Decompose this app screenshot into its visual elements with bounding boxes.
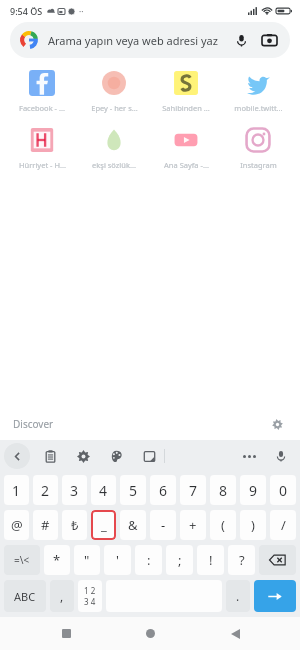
staticText: mobile.twitt... xyxy=(234,103,283,113)
staticText: ) xyxy=(251,516,255,534)
button[interactable]: Ana Sayfa -... xyxy=(150,125,222,172)
staticText: " xyxy=(84,551,90,569)
button[interactable]: Discover ayarları xyxy=(267,414,287,434)
button[interactable]: 8 xyxy=(210,475,236,505)
staticText: 3 4 xyxy=(84,596,96,607)
button[interactable]: Instagram xyxy=(222,125,294,172)
button[interactable]: , xyxy=(50,580,74,612)
staticText: : xyxy=(147,551,151,569)
button[interactable]: mobile.twitt... xyxy=(222,68,294,115)
button[interactable]: Geri xyxy=(216,617,254,650)
staticText: 9 xyxy=(249,481,258,500)
button[interactable]: + xyxy=(180,510,206,540)
staticText: Ana Sayfa -... xyxy=(164,160,209,170)
staticText: Facebook - ... xyxy=(19,103,65,113)
staticText: Hürriyet - H... xyxy=(19,160,66,170)
button[interactable]: Sahibinden ... xyxy=(150,68,222,115)
button[interactable]: / xyxy=(270,510,296,540)
staticText: , xyxy=(60,588,64,604)
button[interactable]: ? xyxy=(228,545,255,575)
button[interactable]: Hürriyet - H... xyxy=(6,125,78,172)
staticText: 1 2 xyxy=(84,585,96,596)
staticText: 6 xyxy=(159,481,168,500)
staticText: _ xyxy=(101,516,107,534)
staticText: 4 xyxy=(99,481,108,500)
button[interactable]: 3 xyxy=(62,475,87,505)
button[interactable]: ' xyxy=(104,545,131,575)
staticText: Sahibinden ... xyxy=(162,103,210,113)
staticText: @ xyxy=(11,516,23,534)
button[interactable]: & xyxy=(120,510,146,540)
staticText: ekşi sözlük... xyxy=(92,160,136,170)
button[interactable]: Daha fazla xyxy=(236,443,262,469)
button[interactable]: : xyxy=(135,545,162,575)
button[interactable]: Yapıştır xyxy=(136,443,162,469)
staticText: Arama yapın veya web adresi yaz xyxy=(48,33,226,48)
button[interactable]: 7 xyxy=(180,475,206,505)
button[interactable]: " xyxy=(74,545,100,575)
staticText: 7 xyxy=(189,481,198,500)
button[interactable]: Pano xyxy=(37,443,63,469)
staticText: & xyxy=(128,516,138,534)
staticText: Discover xyxy=(13,417,54,431)
button[interactable]: ; xyxy=(166,545,193,575)
staticText: . xyxy=(236,588,240,604)
staticText: ₺ xyxy=(71,516,79,534)
staticText: # xyxy=(41,516,50,534)
button[interactable]: * xyxy=(44,545,70,575)
button[interactable]: 6 xyxy=(150,475,176,505)
staticText: ·· xyxy=(79,6,84,17)
button[interactable]: ekşi sözlük... xyxy=(78,125,150,172)
button[interactable]: ! xyxy=(197,545,224,575)
button[interactable]: Geri xyxy=(4,443,30,469)
staticText: + xyxy=(189,516,197,534)
button[interactable]: Git xyxy=(254,580,296,612)
staticText: 3 xyxy=(70,481,79,500)
button[interactable]: # xyxy=(33,510,58,540)
button[interactable]: Google Lens xyxy=(258,29,280,51)
button[interactable]: =\< xyxy=(4,545,40,575)
button[interactable]: Sayı tuş takımı xyxy=(78,580,102,612)
staticText: Epey - her s... xyxy=(91,103,138,113)
staticText: ' xyxy=(116,551,119,569)
button[interactable]: Sesle yaz xyxy=(268,443,294,469)
button[interactable]: . xyxy=(226,580,250,612)
button[interactable]: Temalar xyxy=(103,443,129,469)
staticText: 1 xyxy=(12,481,21,500)
button[interactable]: Ayarlar xyxy=(70,443,96,469)
staticText: =\< xyxy=(14,553,30,567)
staticText: 9:54 ÖS xyxy=(10,5,43,17)
staticText: ! xyxy=(209,551,213,569)
staticText: 8 xyxy=(219,481,228,500)
button[interactable]: - xyxy=(150,510,176,540)
button[interactable]: Sil xyxy=(259,545,296,575)
button[interactable]: ₺ xyxy=(62,510,87,540)
staticText: ABC xyxy=(14,589,36,604)
button[interactable]: ) xyxy=(240,510,266,540)
button[interactable]: 0 xyxy=(270,475,296,505)
button[interactable]: 9 xyxy=(240,475,266,505)
button[interactable]: ABC xyxy=(4,580,46,612)
button[interactable]: 4 xyxy=(91,475,116,505)
staticText: - xyxy=(161,516,166,534)
staticText: ; xyxy=(178,551,182,569)
button[interactable]: ( xyxy=(210,510,236,540)
staticText: 5 xyxy=(129,481,138,500)
button[interactable]: Arama yapın veya web adresi yaz xyxy=(10,22,290,58)
staticText: / xyxy=(281,516,286,534)
staticText: * xyxy=(53,551,61,569)
button[interactable]: 2 xyxy=(33,475,58,505)
button[interactable]: Son uygulamalar xyxy=(47,617,85,650)
staticText: ( xyxy=(221,516,225,534)
button[interactable]: Facebook - ... xyxy=(6,68,78,115)
button[interactable]: Sesli arama xyxy=(230,29,252,51)
button[interactable]: 5 xyxy=(120,475,146,505)
staticText: 0 xyxy=(279,481,288,500)
button[interactable]: 1 xyxy=(4,475,29,505)
staticText: 2 xyxy=(41,481,50,500)
button[interactable]: _ xyxy=(91,510,116,540)
button[interactable]: Ana ekran xyxy=(131,617,169,650)
button[interactable]: @ xyxy=(4,510,29,540)
button[interactable]: Epey - her s... xyxy=(78,68,150,115)
